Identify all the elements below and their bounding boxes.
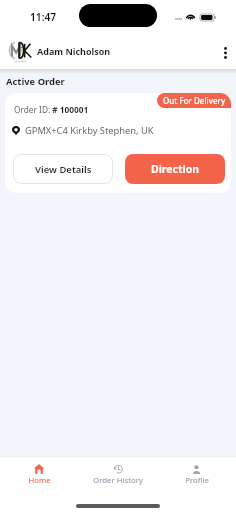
- button[interactable]: Home: [0, 464, 78, 486]
- staticText: Home: [28, 475, 51, 486]
- staticText: Order ID: # 100001: [14, 104, 89, 115]
- button[interactable]: Direction: [125, 154, 225, 184]
- staticText: Active Order: [6, 75, 65, 88]
- staticText: GPMX+C4 Kirkby Stephen, UK: [25, 124, 154, 137]
- button[interactable]: More options: [214, 42, 236, 64]
- button[interactable]: View Details: [13, 154, 113, 184]
- staticText: 11:47: [30, 10, 57, 24]
- button[interactable]: Profile: [157, 464, 236, 486]
- staticText: Order History: [93, 475, 143, 486]
- staticText: View Details: [35, 163, 92, 176]
- button[interactable]: Order History: [78, 464, 157, 486]
- staticText: Profile: [185, 475, 209, 486]
- staticText: Adam Nicholson: [37, 45, 111, 57]
- staticText: Out For Delivery: [163, 95, 226, 106]
- staticText: Direction: [151, 162, 200, 176]
